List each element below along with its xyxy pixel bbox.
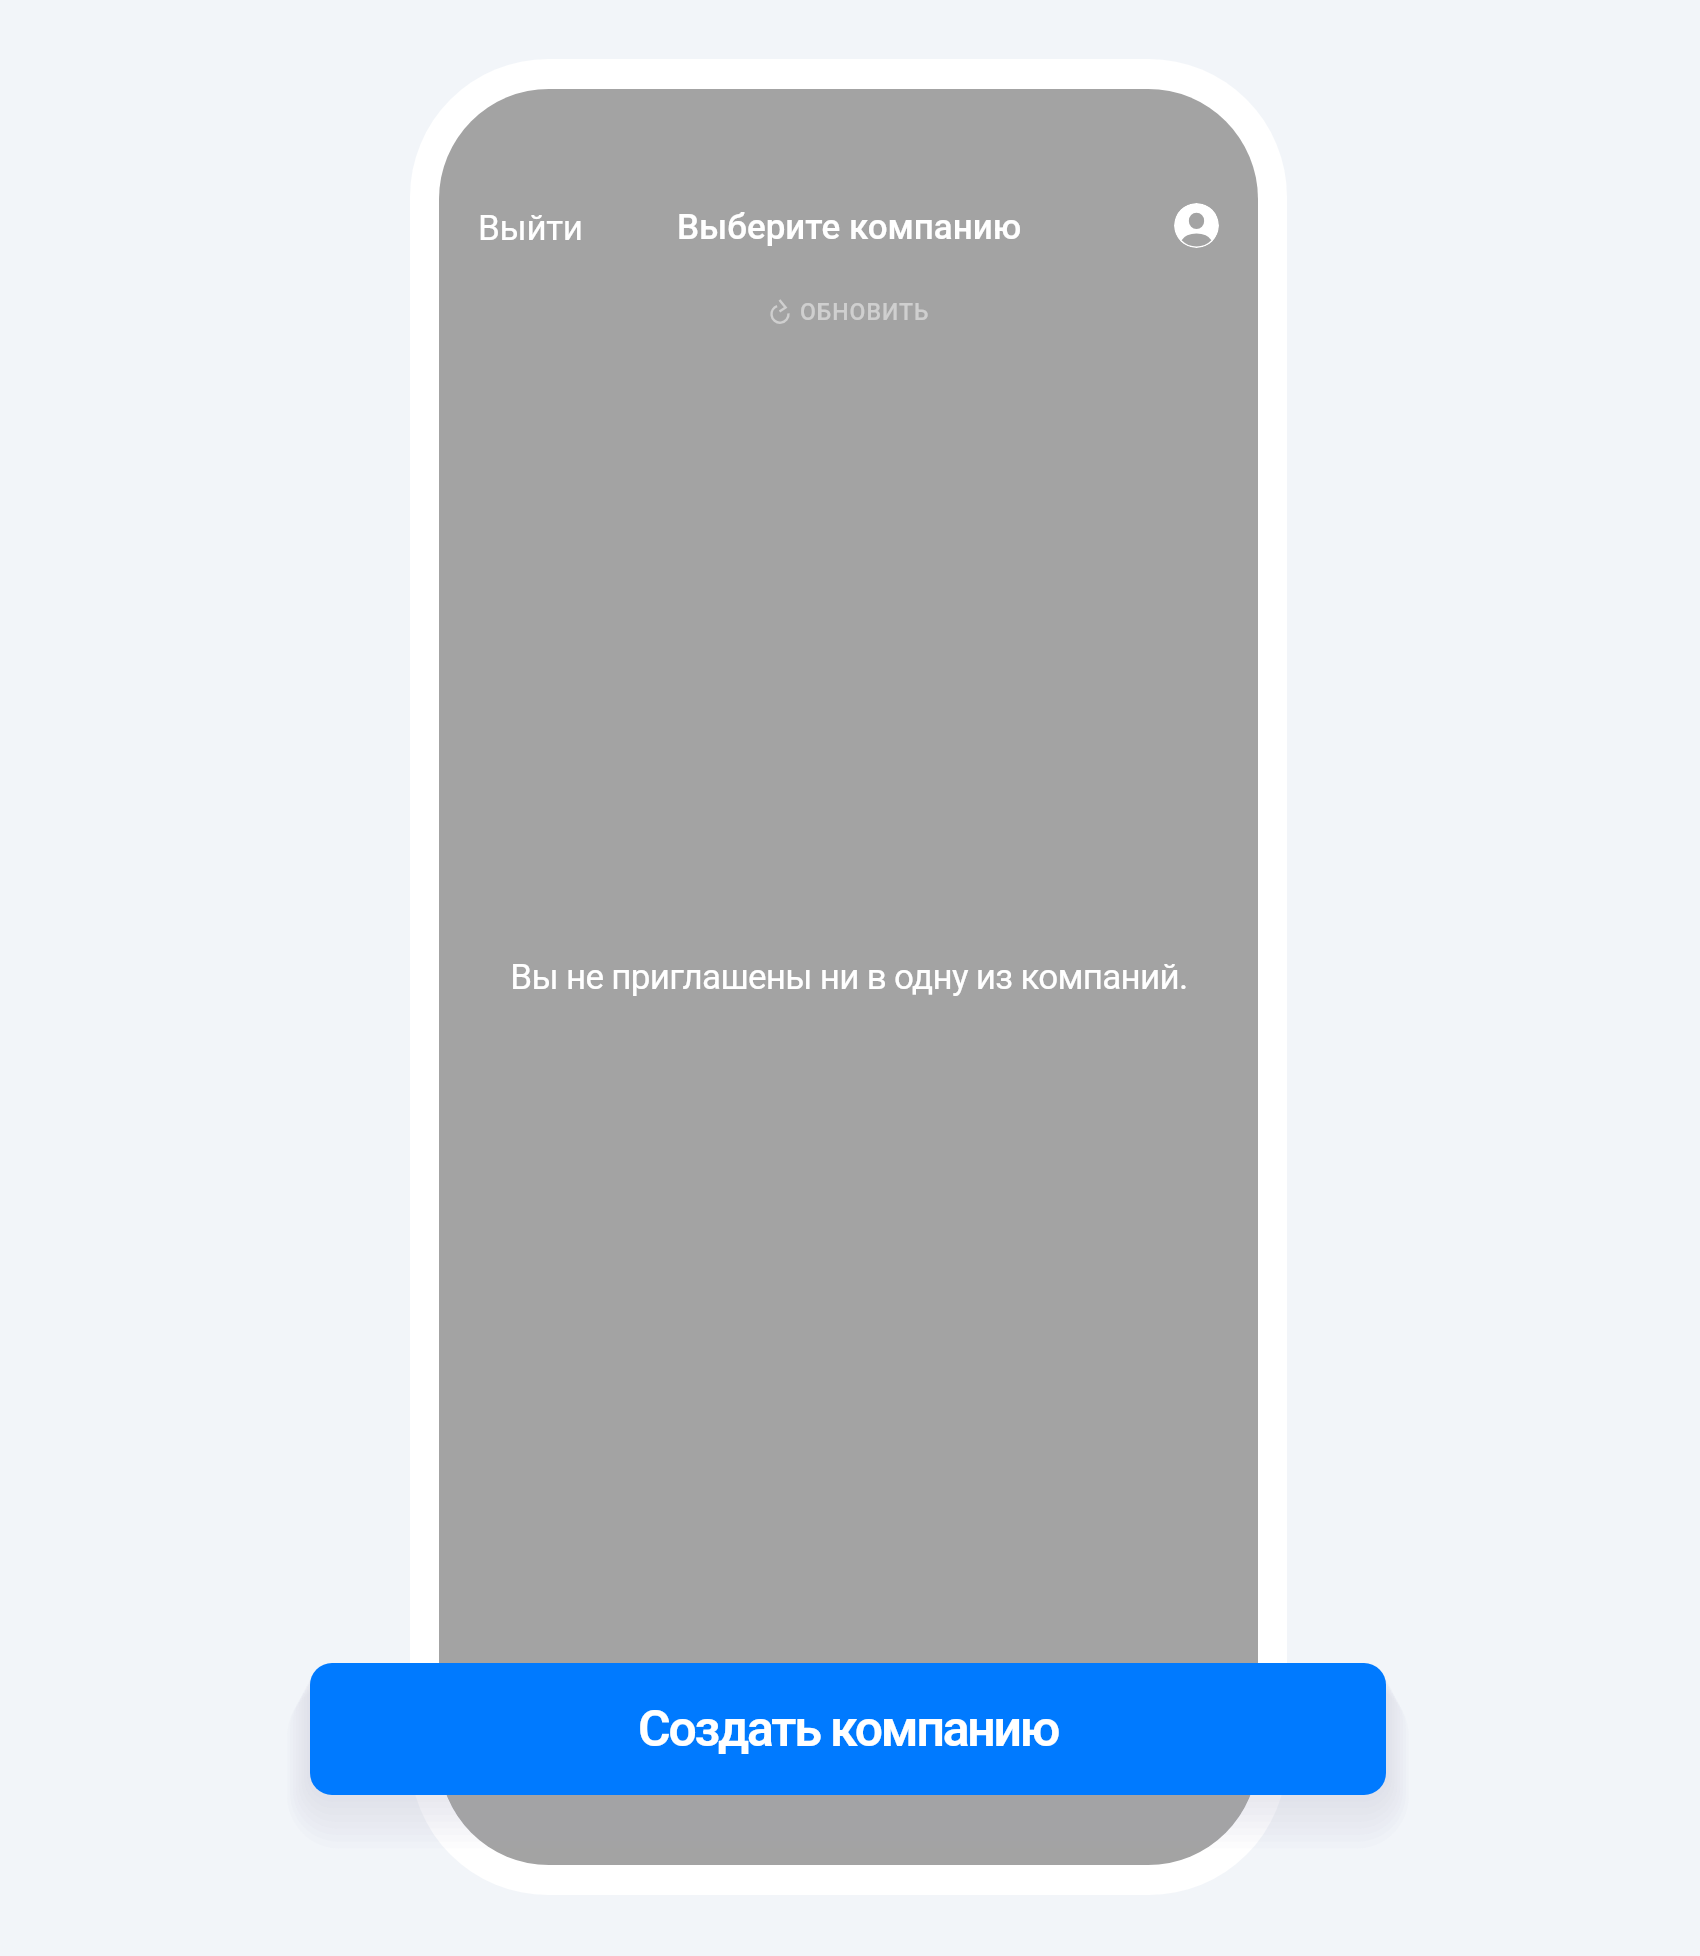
staticText: Выберите компанию <box>677 207 1022 248</box>
button[interactable]: Account <box>1174 203 1219 248</box>
staticText: Создать компанию <box>638 1700 1059 1759</box>
button[interactable]: ОБНОВИТЬ <box>753 275 944 350</box>
staticText: ОБНОВИТЬ <box>800 299 930 326</box>
staticText: Выйти <box>478 208 583 249</box>
button[interactable]: Создать компанию <box>310 1663 1386 1795</box>
button[interactable]: Выйти <box>454 185 607 272</box>
staticText: Вы не приглашены ни в одну из компаний. <box>510 957 1188 998</box>
